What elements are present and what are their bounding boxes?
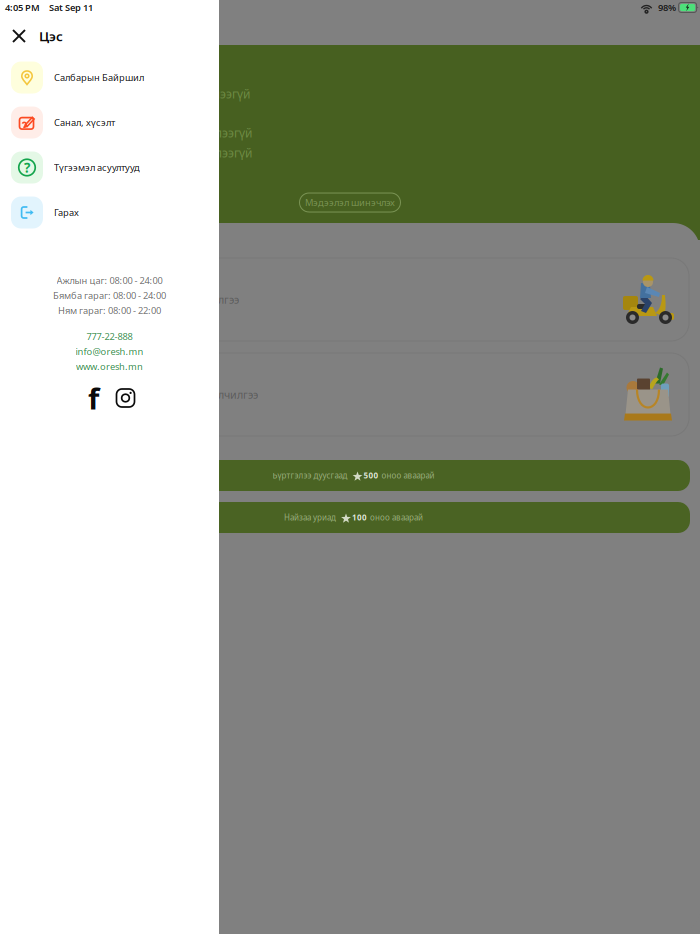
button[interactable]: Санал, хүсэлт <box>0 100 219 145</box>
button[interactable]: Close menu <box>6 23 32 49</box>
staticText: Шуурхай хүргэлтийн үйлчилгээ <box>78 292 239 307</box>
staticText: Утас: бүртгүүлээгүй <box>140 125 252 141</box>
staticText: Ням гараг: 08:00 - 22:00 <box>58 304 161 317</box>
button[interactable]: Найзаа уриад <box>0 502 700 533</box>
staticText: 100 <box>352 512 367 523</box>
staticText: 4:05 PM <box>5 1 40 14</box>
staticText: Гарах <box>54 206 79 219</box>
staticText: Салбарын Байршил <box>54 71 144 84</box>
button[interactable]: ? <box>0 145 219 190</box>
button[interactable]: www.oresh.mn <box>76 359 143 374</box>
staticText: f <box>88 378 99 417</box>
staticText: info@oresh.mn <box>75 345 143 358</box>
staticText: Санал, хүсэлт <box>54 116 115 129</box>
staticText: Мэдээлэл шинэчлэх <box>305 196 395 209</box>
staticText: оноо аваарай <box>370 512 423 523</box>
button[interactable]: info@oresh.mn <box>75 344 143 359</box>
button[interactable]: Instagram <box>114 388 136 408</box>
button[interactable]: Онлайн дэлгүүрийн үйлчилгээ <box>0 353 700 436</box>
staticText: Нэр: бүртгүүлээгүй <box>142 86 250 102</box>
staticText: Имэйл бүртгүүлээгүй <box>131 145 252 161</box>
button[interactable]: Бүртгэлээ дуусгаад <box>0 460 700 491</box>
staticText: Түгээмэл асуултууд <box>54 161 140 174</box>
staticText: Ажлын цаг: 08:00 - 24:00 <box>56 274 162 287</box>
staticText: 777-22-888 <box>86 330 132 343</box>
button[interactable]: Facebook <box>82 388 104 408</box>
staticText: 98% <box>658 1 676 14</box>
staticText: оноо аваарай <box>381 470 434 481</box>
staticText: ? <box>24 159 30 176</box>
staticText: Бүртгэлээ дуусгаад <box>272 470 347 481</box>
staticText: Найзаа уриад <box>284 512 336 523</box>
button[interactable]: Мэдээлэл шинэчлэх <box>299 193 400 212</box>
staticText: Sat Sep 11 <box>49 1 93 14</box>
button[interactable]: 777-22-888 <box>86 329 132 344</box>
staticText: 500 <box>363 470 378 481</box>
button[interactable]: Шуурхай хүргэлтийн үйлчилгээ <box>0 258 700 341</box>
staticText: Бямба гараг: 08:00 - 24:00 <box>53 289 166 302</box>
button[interactable]: Салбарын Байршил <box>0 55 219 100</box>
staticText: Онлайн дэлгүүрийн үйлчилгээ <box>100 387 258 402</box>
staticText: Цэс <box>39 27 63 45</box>
button[interactable]: Гарах <box>0 190 219 235</box>
staticText: www.oresh.mn <box>76 360 143 373</box>
